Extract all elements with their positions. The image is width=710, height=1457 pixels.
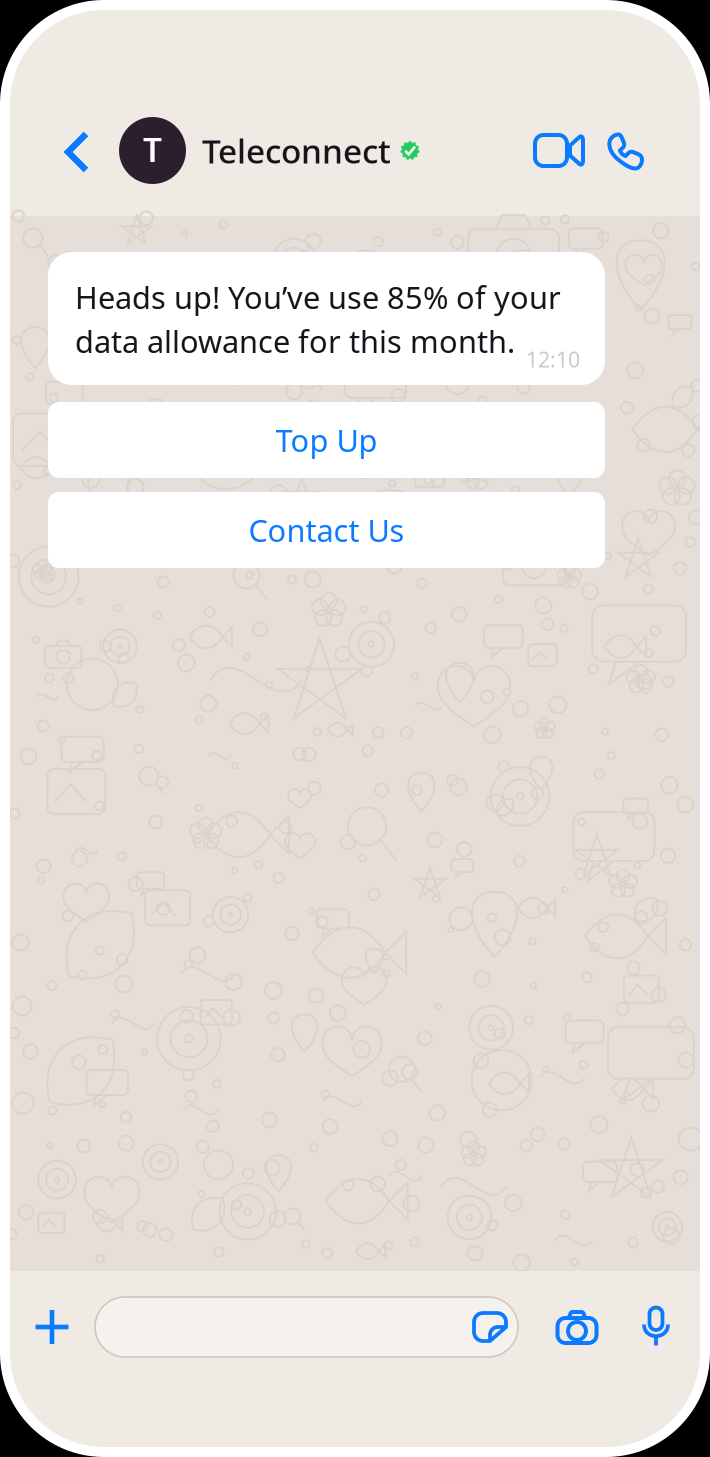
button[interactable]: Contact Us xyxy=(48,492,605,568)
staticText: Top Up xyxy=(275,420,377,460)
button[interactable]: Back xyxy=(10,10,108,190)
button[interactable]: Video call xyxy=(10,10,595,188)
staticText: data allowance for this month. xyxy=(75,321,515,361)
staticText: Heads up! You’ve use 85% of your xyxy=(75,277,561,317)
button[interactable]: Voice call xyxy=(10,10,670,187)
button[interactable]: Attach xyxy=(26,1297,78,1357)
staticText: Contact Us xyxy=(248,510,404,550)
button[interactable]: Stickers xyxy=(469,1297,511,1357)
staticText: T xyxy=(143,127,162,172)
staticText: Teleconnect xyxy=(202,128,391,173)
staticText: 12:10 xyxy=(526,345,580,373)
button[interactable]: T xyxy=(10,10,420,194)
button[interactable]: Voice message xyxy=(639,1297,673,1357)
button[interactable]: Camera xyxy=(552,1297,602,1357)
button[interactable]: Top Up xyxy=(48,402,605,478)
